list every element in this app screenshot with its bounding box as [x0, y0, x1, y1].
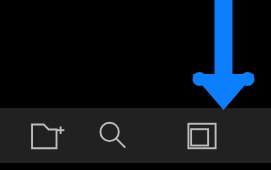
- button[interactable]: Search: [85, 108, 141, 163]
- button[interactable]: New folder: [19, 108, 75, 163]
- button[interactable]: Change view: [174, 108, 230, 163]
